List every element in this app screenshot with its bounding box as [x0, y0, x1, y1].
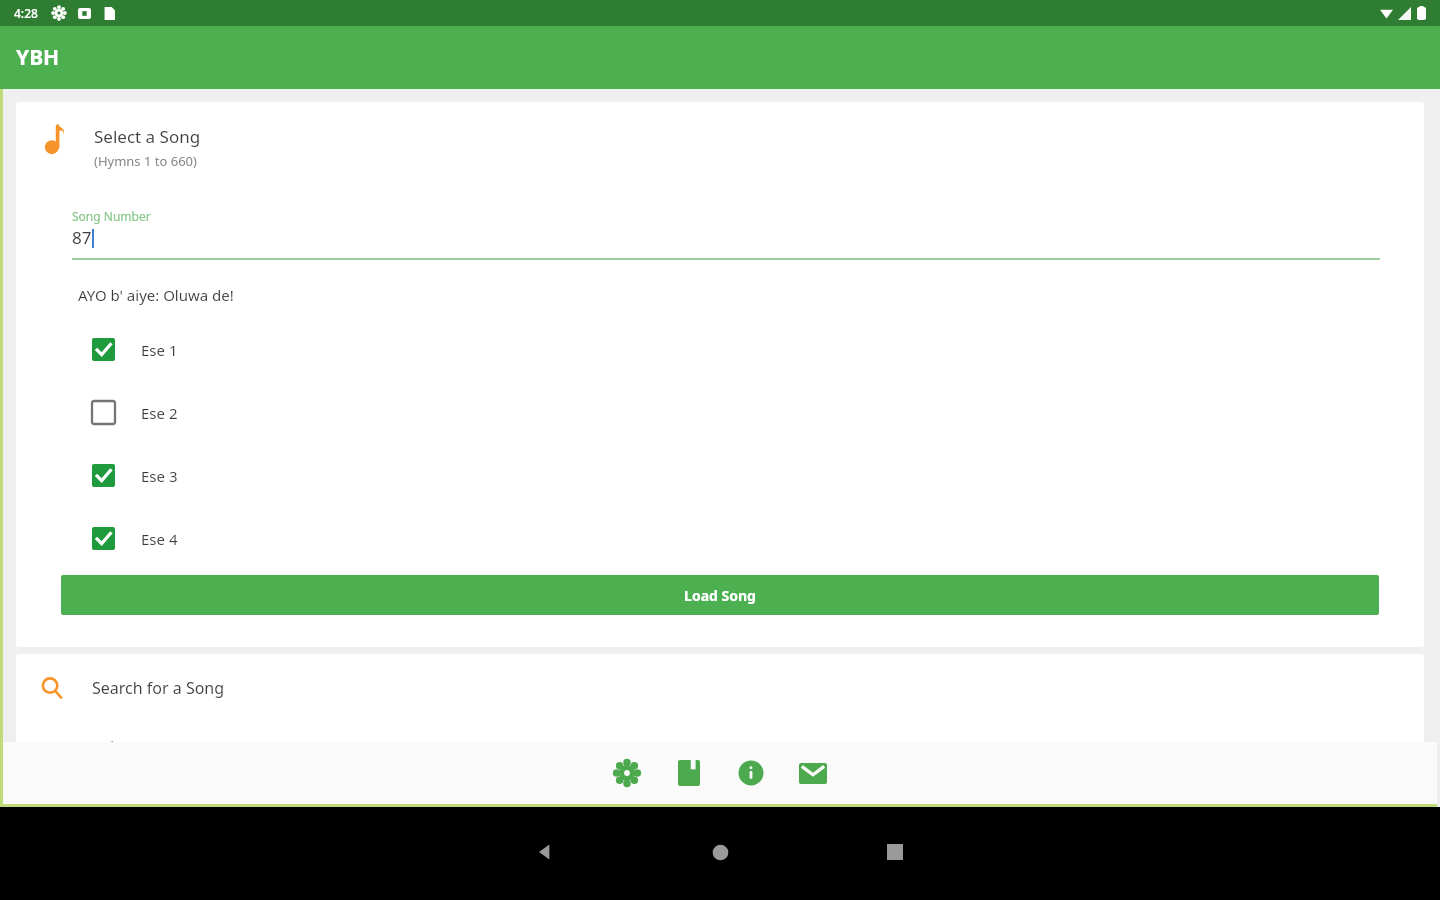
- staticText: YBH: [16, 43, 60, 72]
- button[interactable]: Info: [720, 742, 782, 804]
- button[interactable]: Recent apps: [820, 822, 970, 882]
- staticText: Ese 3: [141, 466, 178, 486]
- staticText: 87: [72, 226, 92, 249]
- staticText: Load Song: [684, 586, 756, 605]
- button[interactable]: Home: [645, 822, 795, 882]
- button[interactable]: Settings: [596, 742, 658, 804]
- button[interactable]: Ese 4: [92, 527, 1404, 550]
- button[interactable]: Ese 1: [92, 338, 1404, 361]
- button[interactable]: Back: [470, 822, 620, 882]
- staticText: Ese 1: [141, 340, 178, 360]
- button[interactable]: Book: [658, 742, 720, 804]
- staticText: AYO b' aiye: Oluwa de!: [78, 285, 234, 305]
- staticText: Ese 2: [141, 403, 178, 423]
- staticText: Search: [72, 736, 120, 756]
- staticText: Ese 4: [141, 529, 178, 549]
- button[interactable]: Load Song: [61, 575, 1379, 615]
- staticText: Search for a Song: [92, 677, 225, 699]
- staticText: 4:28: [14, 5, 38, 21]
- staticText: Select a Song: [94, 125, 201, 148]
- staticText: Song Number: [72, 208, 151, 224]
- staticText: (Hymns 1 to 660): [94, 152, 197, 170]
- button[interactable]: Ese 2: [92, 401, 1404, 424]
- button[interactable]: Email: [782, 742, 844, 804]
- button[interactable]: Ese 3: [92, 464, 1404, 487]
